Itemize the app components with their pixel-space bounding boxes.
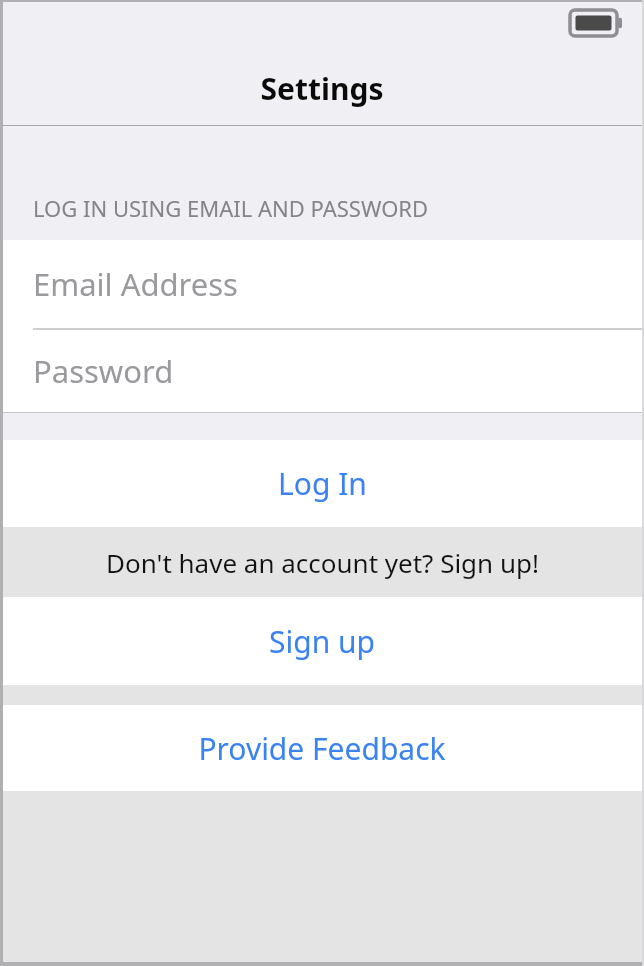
button[interactable]: Log In — [0, 440, 644, 527]
staticText: Log In — [278, 463, 367, 504]
staticText: Provide Feedback — [198, 728, 446, 769]
button[interactable]: Email Address — [0, 240, 644, 328]
staticText: Don't have an account yet? Sign up! — [106, 545, 539, 580]
button[interactable]: Password — [0, 330, 644, 412]
button[interactable]: Sign up — [0, 597, 644, 685]
staticText: Password — [33, 350, 174, 392]
other: Battery full — [570, 10, 622, 36]
staticText: Settings — [0, 68, 644, 109]
staticText: LOG IN USING EMAIL AND PASSWORD — [33, 193, 429, 223]
button[interactable]: Provide Feedback — [0, 705, 644, 791]
staticText: Email Address — [33, 263, 238, 305]
staticText: Sign up — [269, 621, 375, 662]
